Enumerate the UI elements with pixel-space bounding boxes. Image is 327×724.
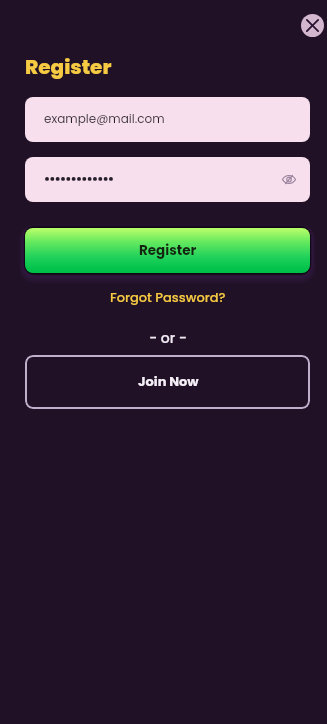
button[interactable]: Show password [282,174,296,185]
button[interactable]: Show password [25,157,310,202]
staticText: Forgot Password? [110,288,226,306]
button[interactable]: Join Now [25,355,310,409]
button[interactable]: Forgot Password? [25,288,310,306]
staticText: Join Now [138,372,199,390]
staticText: example@mail.com [44,110,165,127]
staticText: - or - [149,328,187,346]
staticText: Register [25,53,112,81]
staticText: Register [139,241,197,260]
button[interactable]: Close [301,14,324,37]
button[interactable]: example@mail.com [25,97,310,142]
button[interactable]: Register [25,228,310,273]
